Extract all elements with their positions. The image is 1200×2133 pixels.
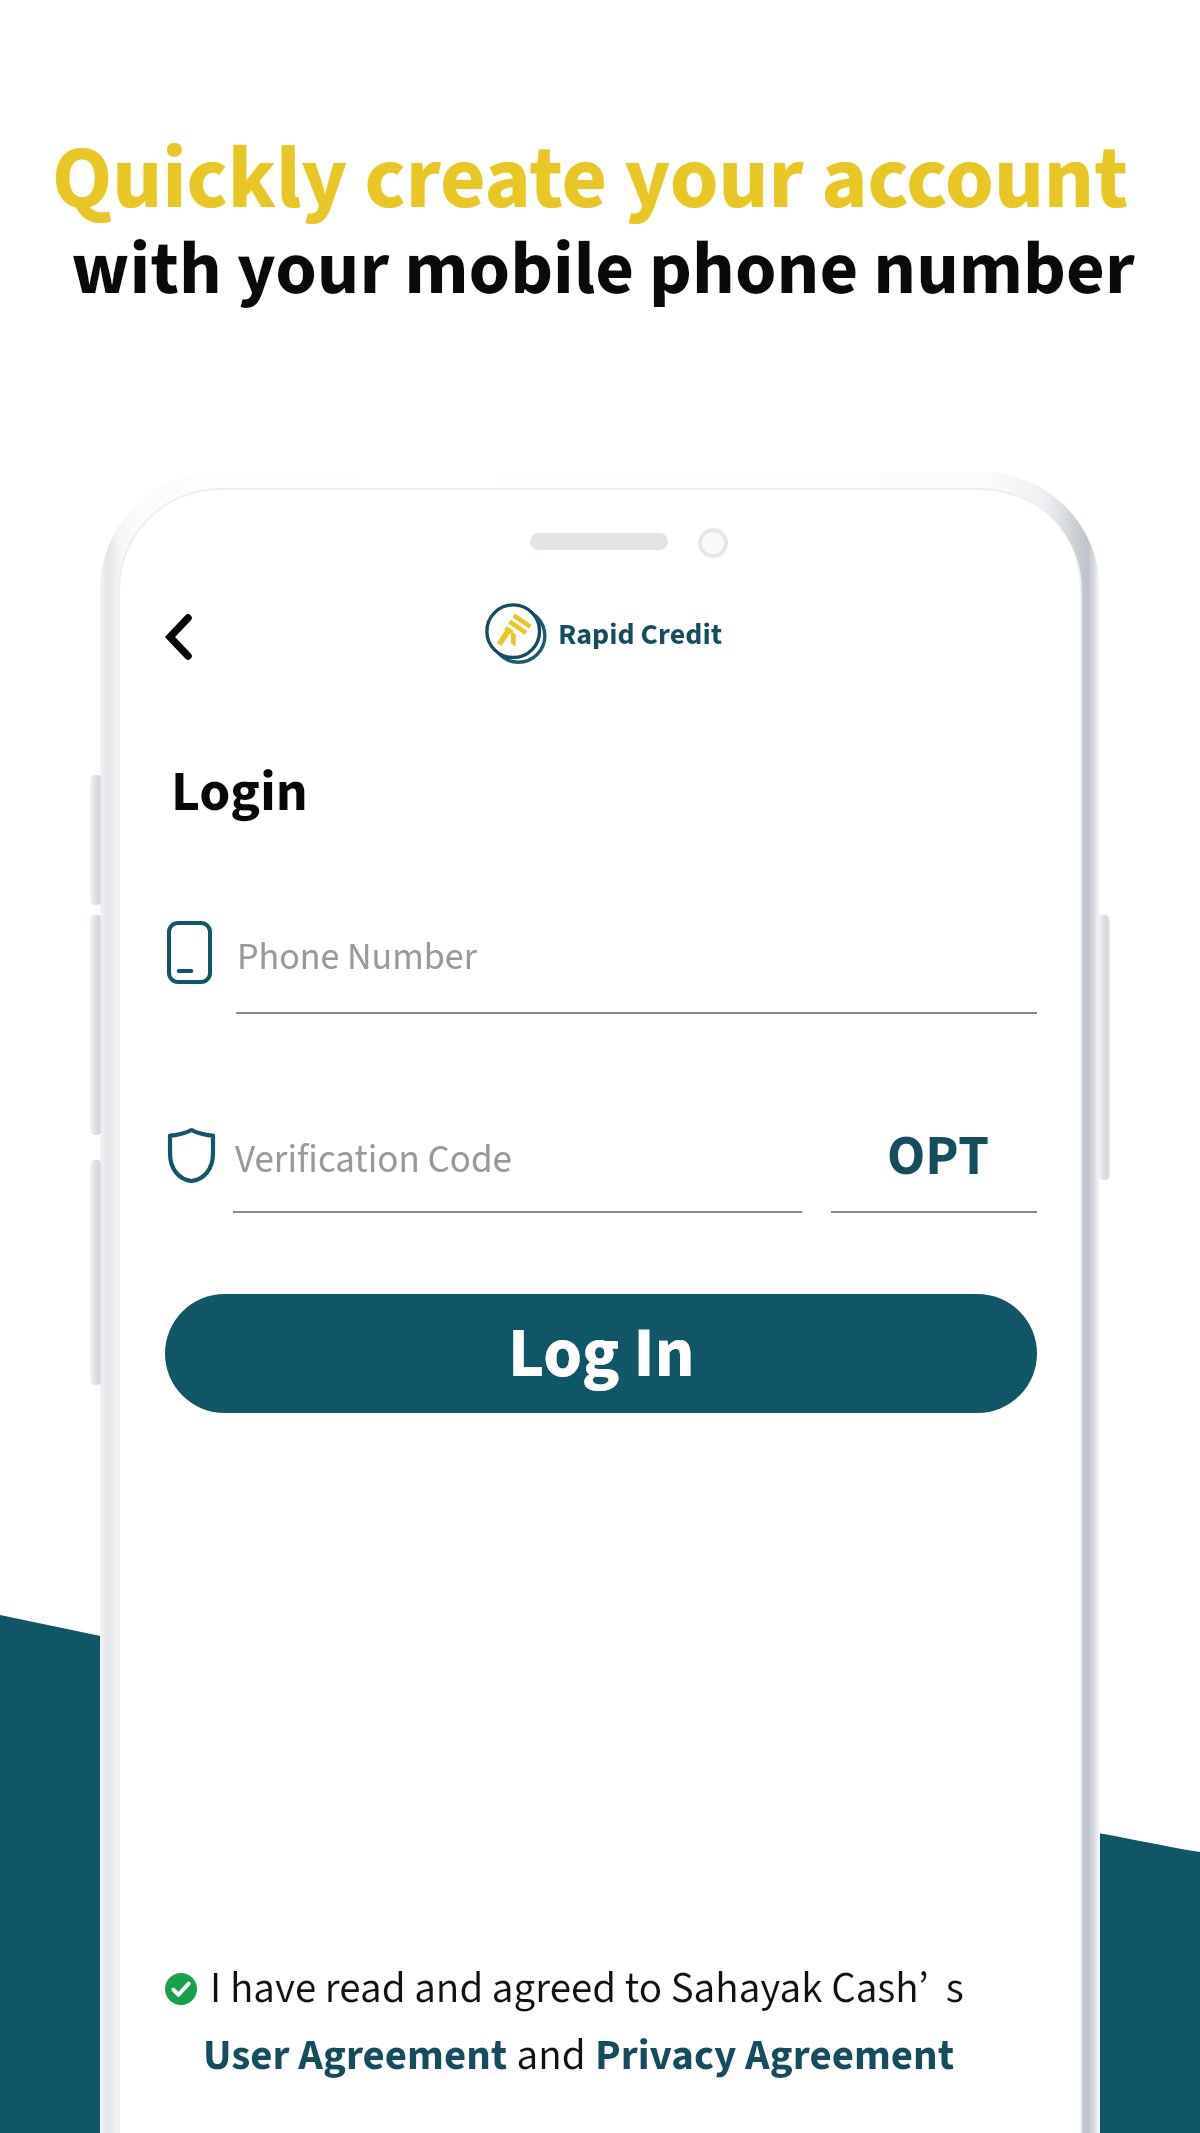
button[interactable]: Back [143, 591, 215, 683]
staticText: Verification Code [235, 1132, 512, 1188]
staticText: OPT [887, 1117, 990, 1197]
button[interactable]: OPT [840, 1116, 990, 1198]
staticText: Phone Number [237, 930, 477, 984]
staticText: Rapid Credit [558, 613, 723, 656]
button[interactable]: User Agreement [203, 2025, 508, 2086]
staticText: Quickly create your account [52, 117, 1128, 242]
staticText: with your mobile phone number [71, 216, 1135, 323]
staticText: I have read and agreed to Sahayak Cash’ … [210, 1958, 964, 2019]
staticText: Log In [508, 1304, 695, 1404]
button[interactable]: Log In [165, 1294, 1037, 1413]
staticText: Login [171, 753, 308, 833]
button[interactable]: Agreement accepted [165, 1973, 197, 2005]
button[interactable]: Privacy Agreement [595, 2025, 955, 2086]
staticText: and [508, 2025, 595, 2086]
